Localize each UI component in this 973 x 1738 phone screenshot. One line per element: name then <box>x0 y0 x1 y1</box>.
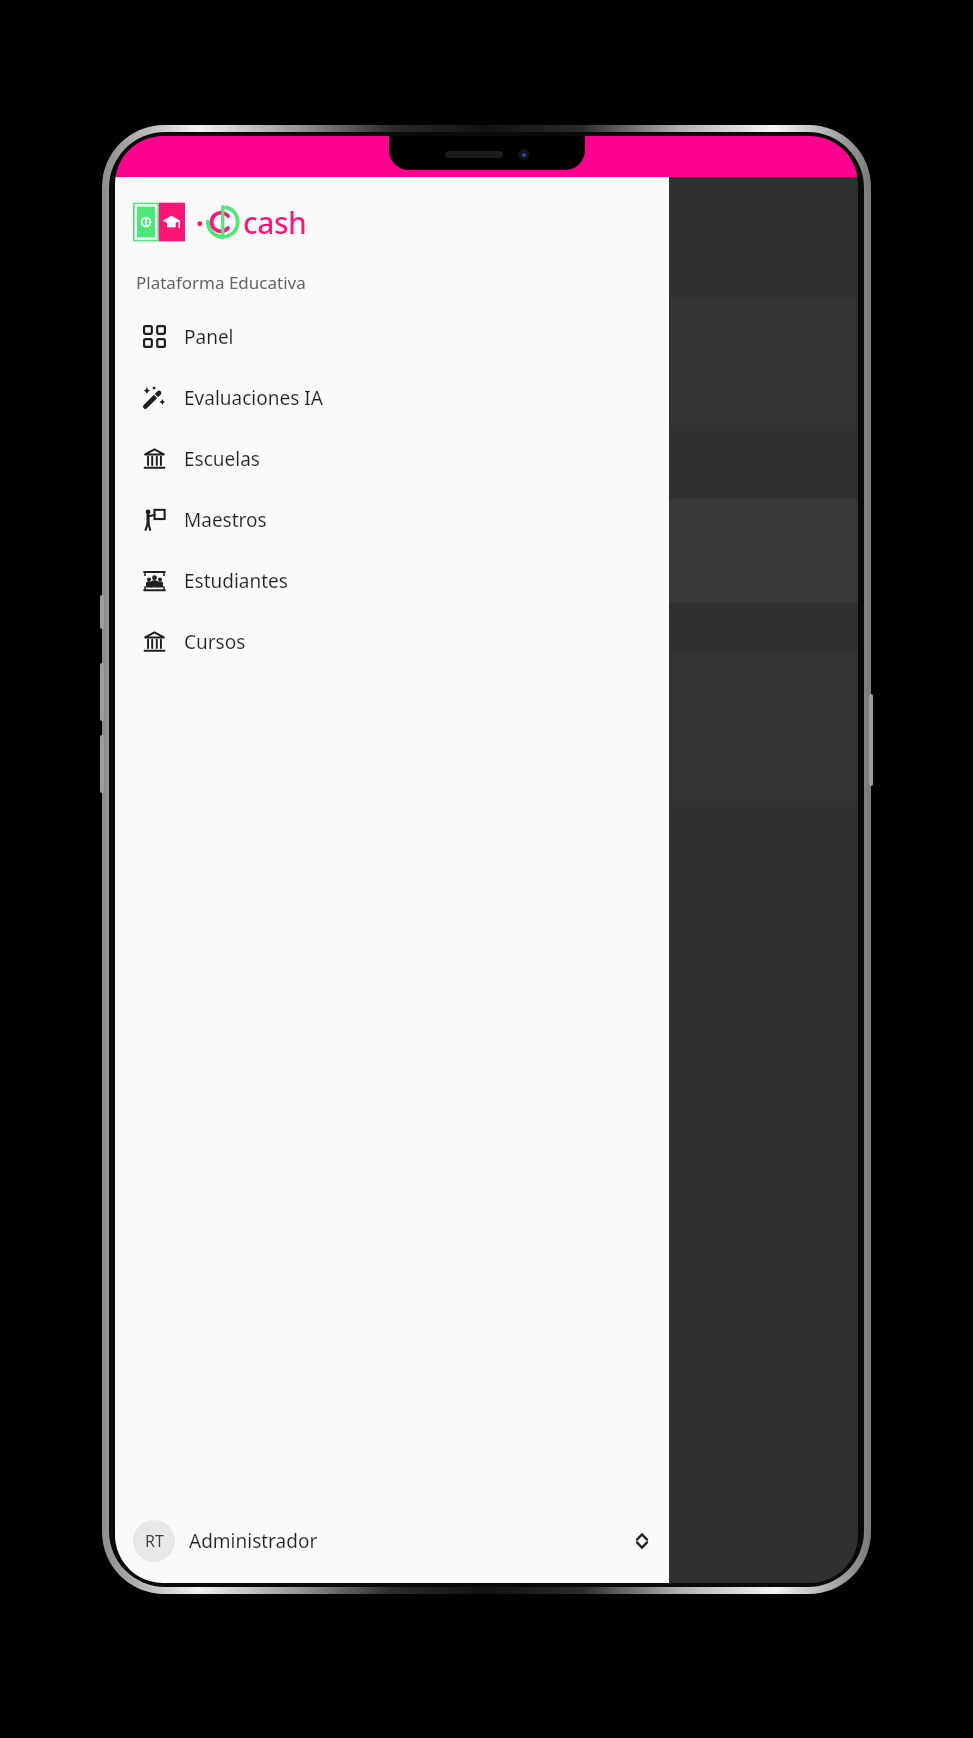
staticText: Maestros <box>184 507 267 533</box>
staticText: Escuelas <box>184 446 260 472</box>
staticText: cash <box>243 202 307 243</box>
button[interactable]: Escuelas <box>133 428 655 489</box>
staticText: Estudiantes <box>184 568 288 594</box>
staticText: Evaluaciones IA <box>184 385 323 411</box>
staticText: Administrador <box>189 1528 318 1554</box>
button[interactable]: Maestros <box>133 489 655 550</box>
other: Cambiar cuenta <box>633 1532 651 1550</box>
staticText: RT <box>145 1530 164 1552</box>
staticText: Cursos <box>184 629 246 655</box>
staticText: Plataforma Educativa <box>136 271 306 294</box>
button[interactable]: Evaluaciones IA <box>133 367 655 428</box>
button[interactable]: RT <box>115 1505 669 1577</box>
button[interactable]: Estudiantes <box>133 550 655 611</box>
button[interactable]: Panel <box>133 306 655 367</box>
staticText: Panel <box>184 324 234 350</box>
button[interactable]: Cursos <box>133 611 655 672</box>
button[interactable] <box>669 177 858 1583</box>
